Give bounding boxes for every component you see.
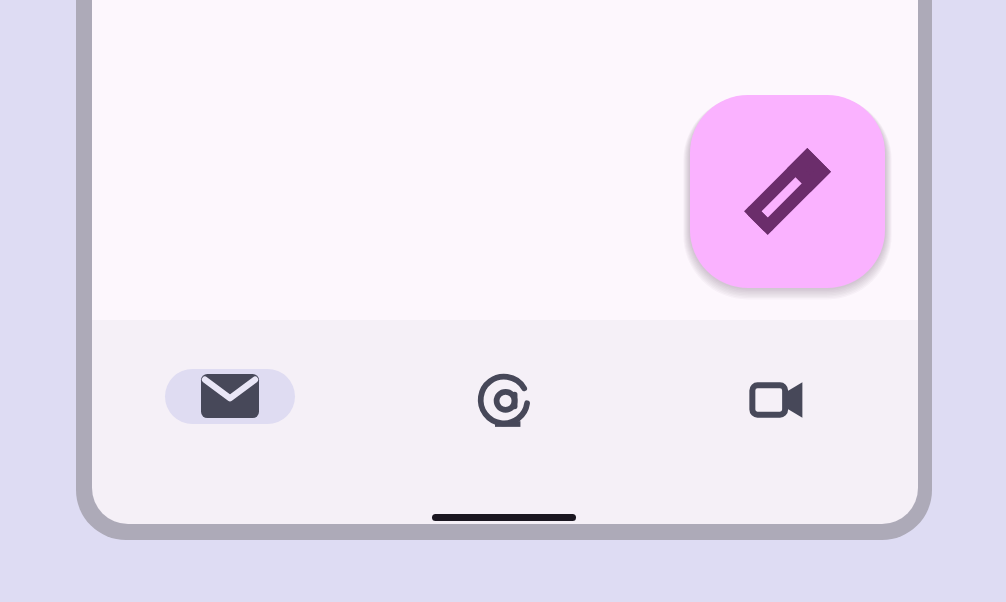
button[interactable]: Alternate email <box>444 360 564 432</box>
button[interactable]: Compose <box>690 95 885 288</box>
button[interactable]: Video call <box>719 360 839 432</box>
button[interactable]: Mail <box>165 360 295 432</box>
